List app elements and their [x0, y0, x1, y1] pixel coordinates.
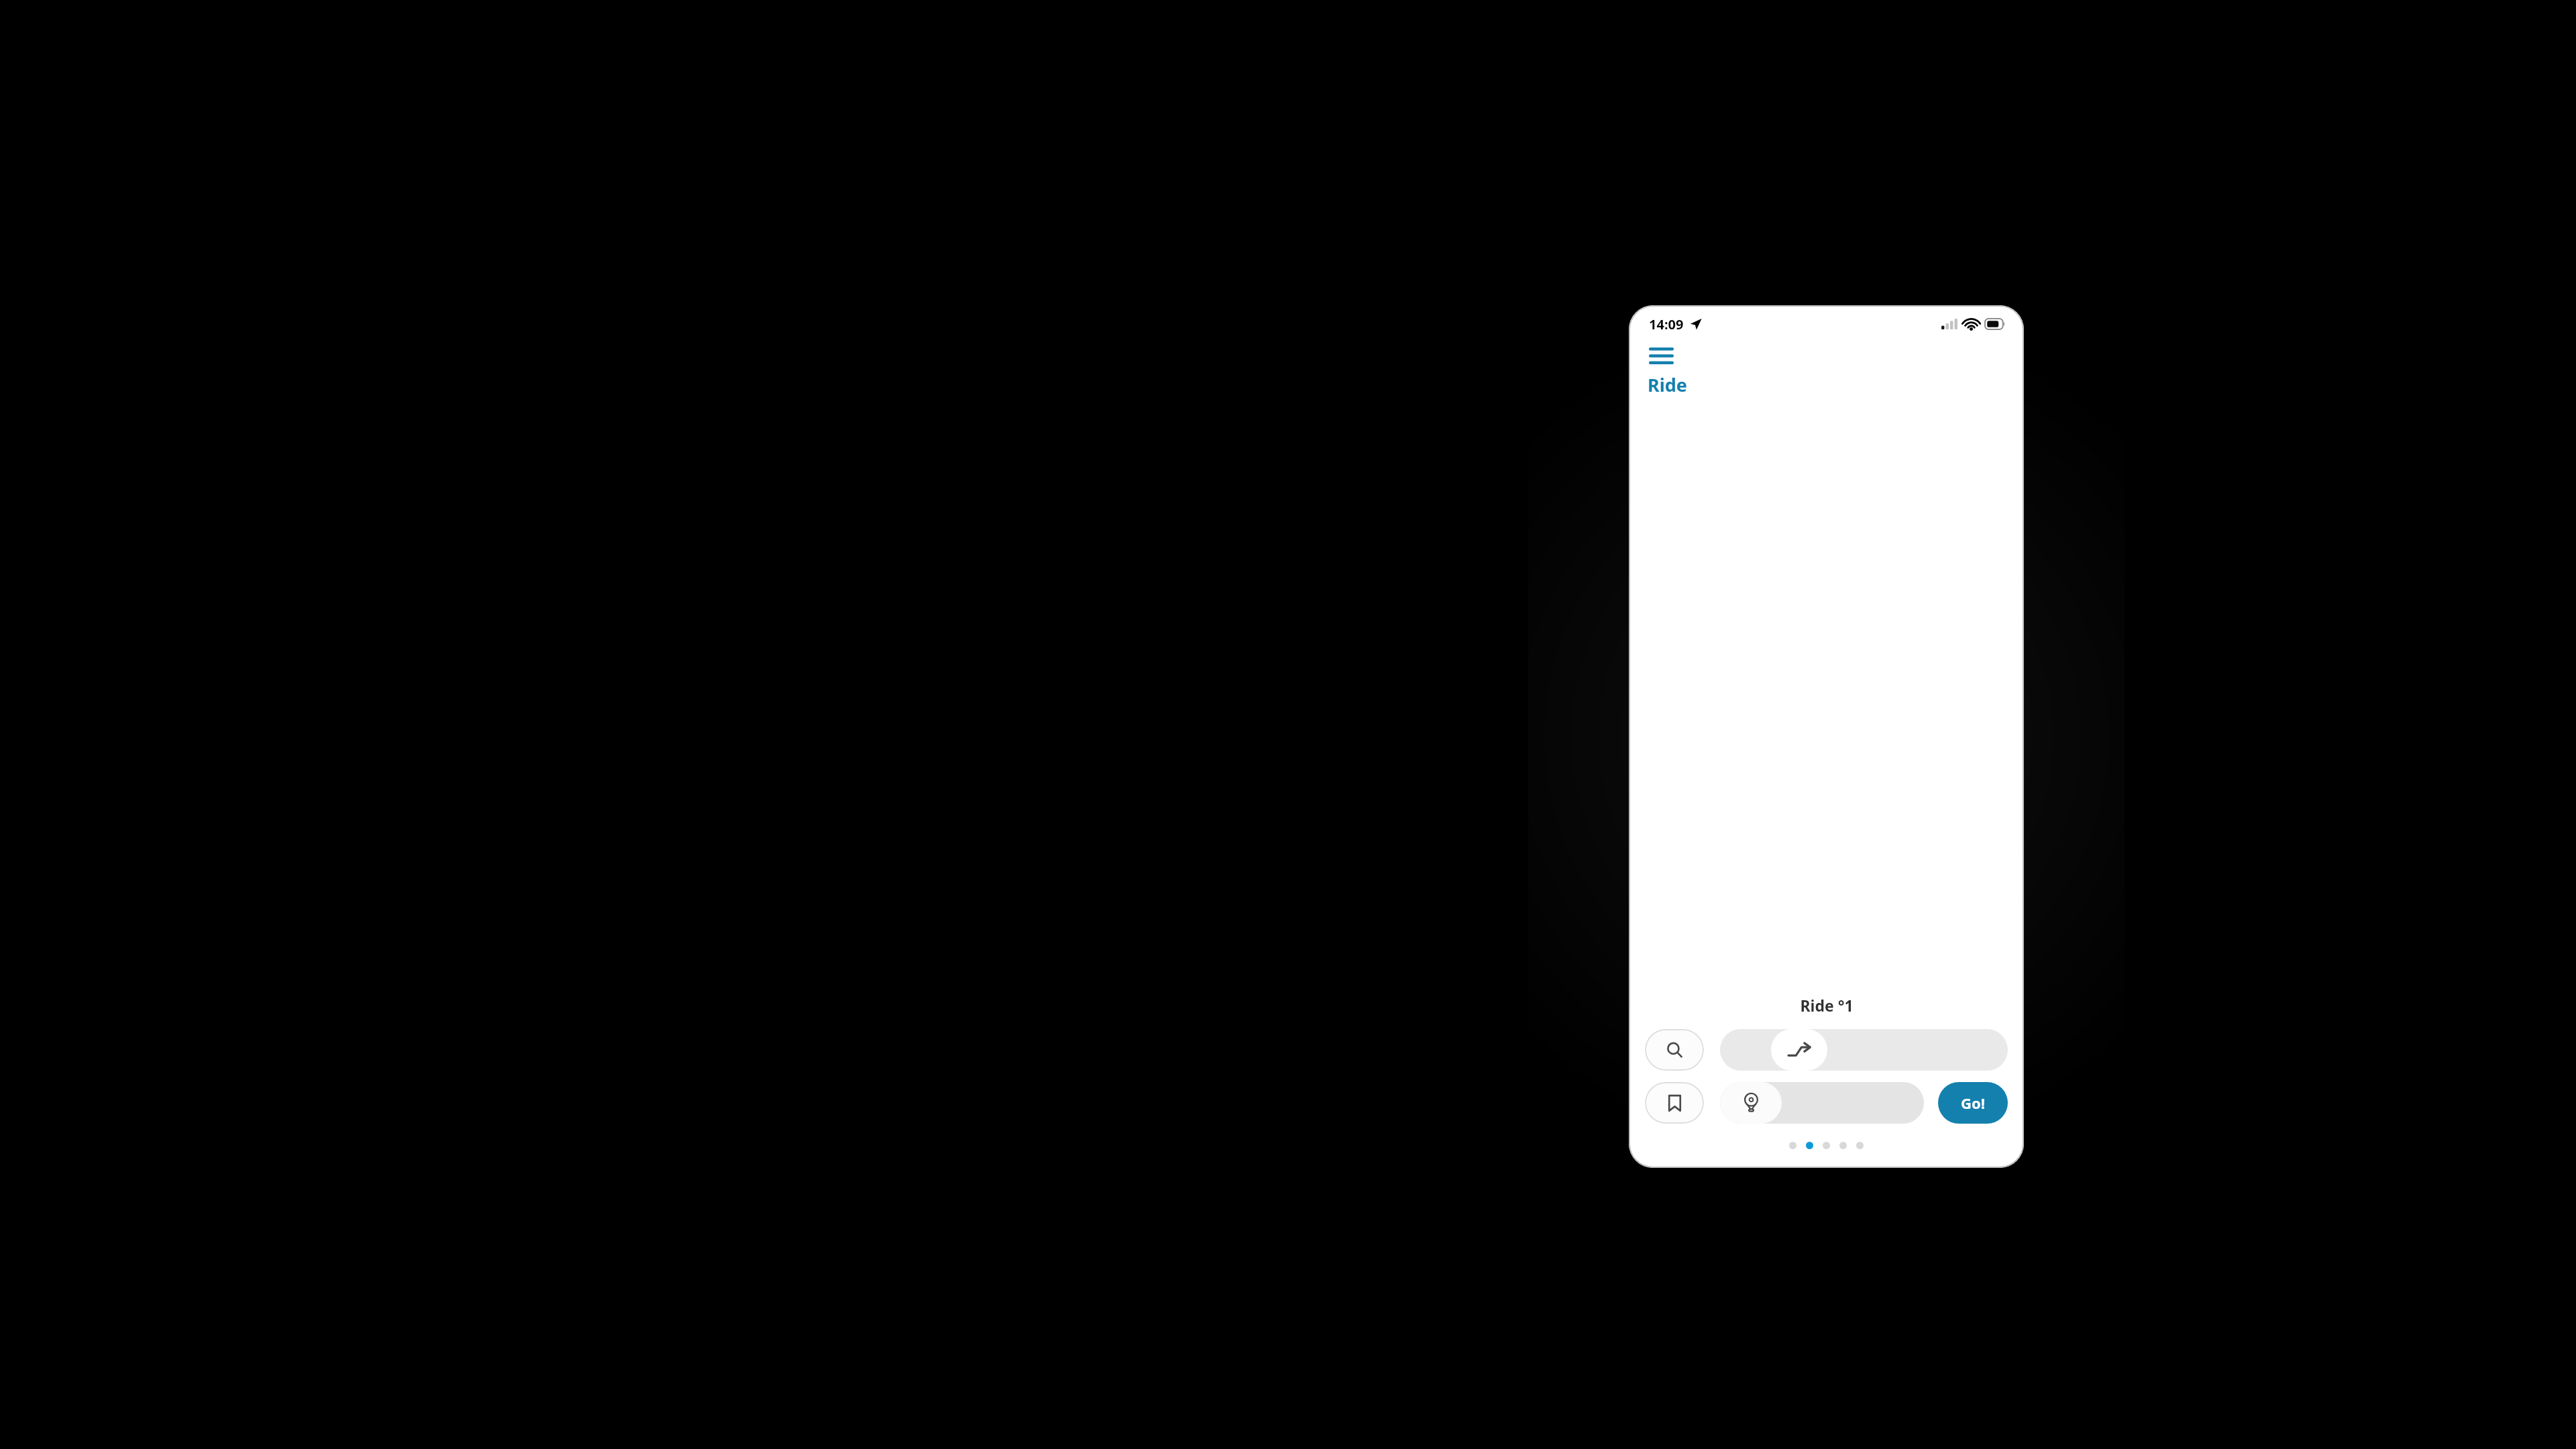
button[interactable]: Page 5	[1856, 1142, 1864, 1149]
staticText: Ride °1	[1800, 995, 1854, 1016]
button[interactable]: Search	[1645, 1029, 1704, 1071]
button[interactable]: Page 4	[1839, 1142, 1847, 1149]
button[interactable]: Turn direction	[1720, 1029, 2008, 1071]
staticText: Ride	[1648, 372, 1687, 397]
staticText: Go!	[1961, 1093, 1985, 1113]
button[interactable]: Destination	[1720, 1082, 1924, 1124]
button[interactable]: Page 3	[1823, 1142, 1830, 1149]
staticText: 14:09	[1649, 315, 1684, 333]
button[interactable]: Page 2	[1806, 1142, 1813, 1149]
button[interactable]: Turn direction	[1771, 1029, 1827, 1071]
button[interactable]: Menu	[1648, 344, 1675, 368]
button[interactable]: Go!	[1938, 1082, 2008, 1124]
button[interactable]: Bookmarks	[1645, 1082, 1704, 1124]
button[interactable]: Page 1	[1789, 1142, 1796, 1149]
button[interactable]: Destination	[1720, 1082, 1782, 1124]
